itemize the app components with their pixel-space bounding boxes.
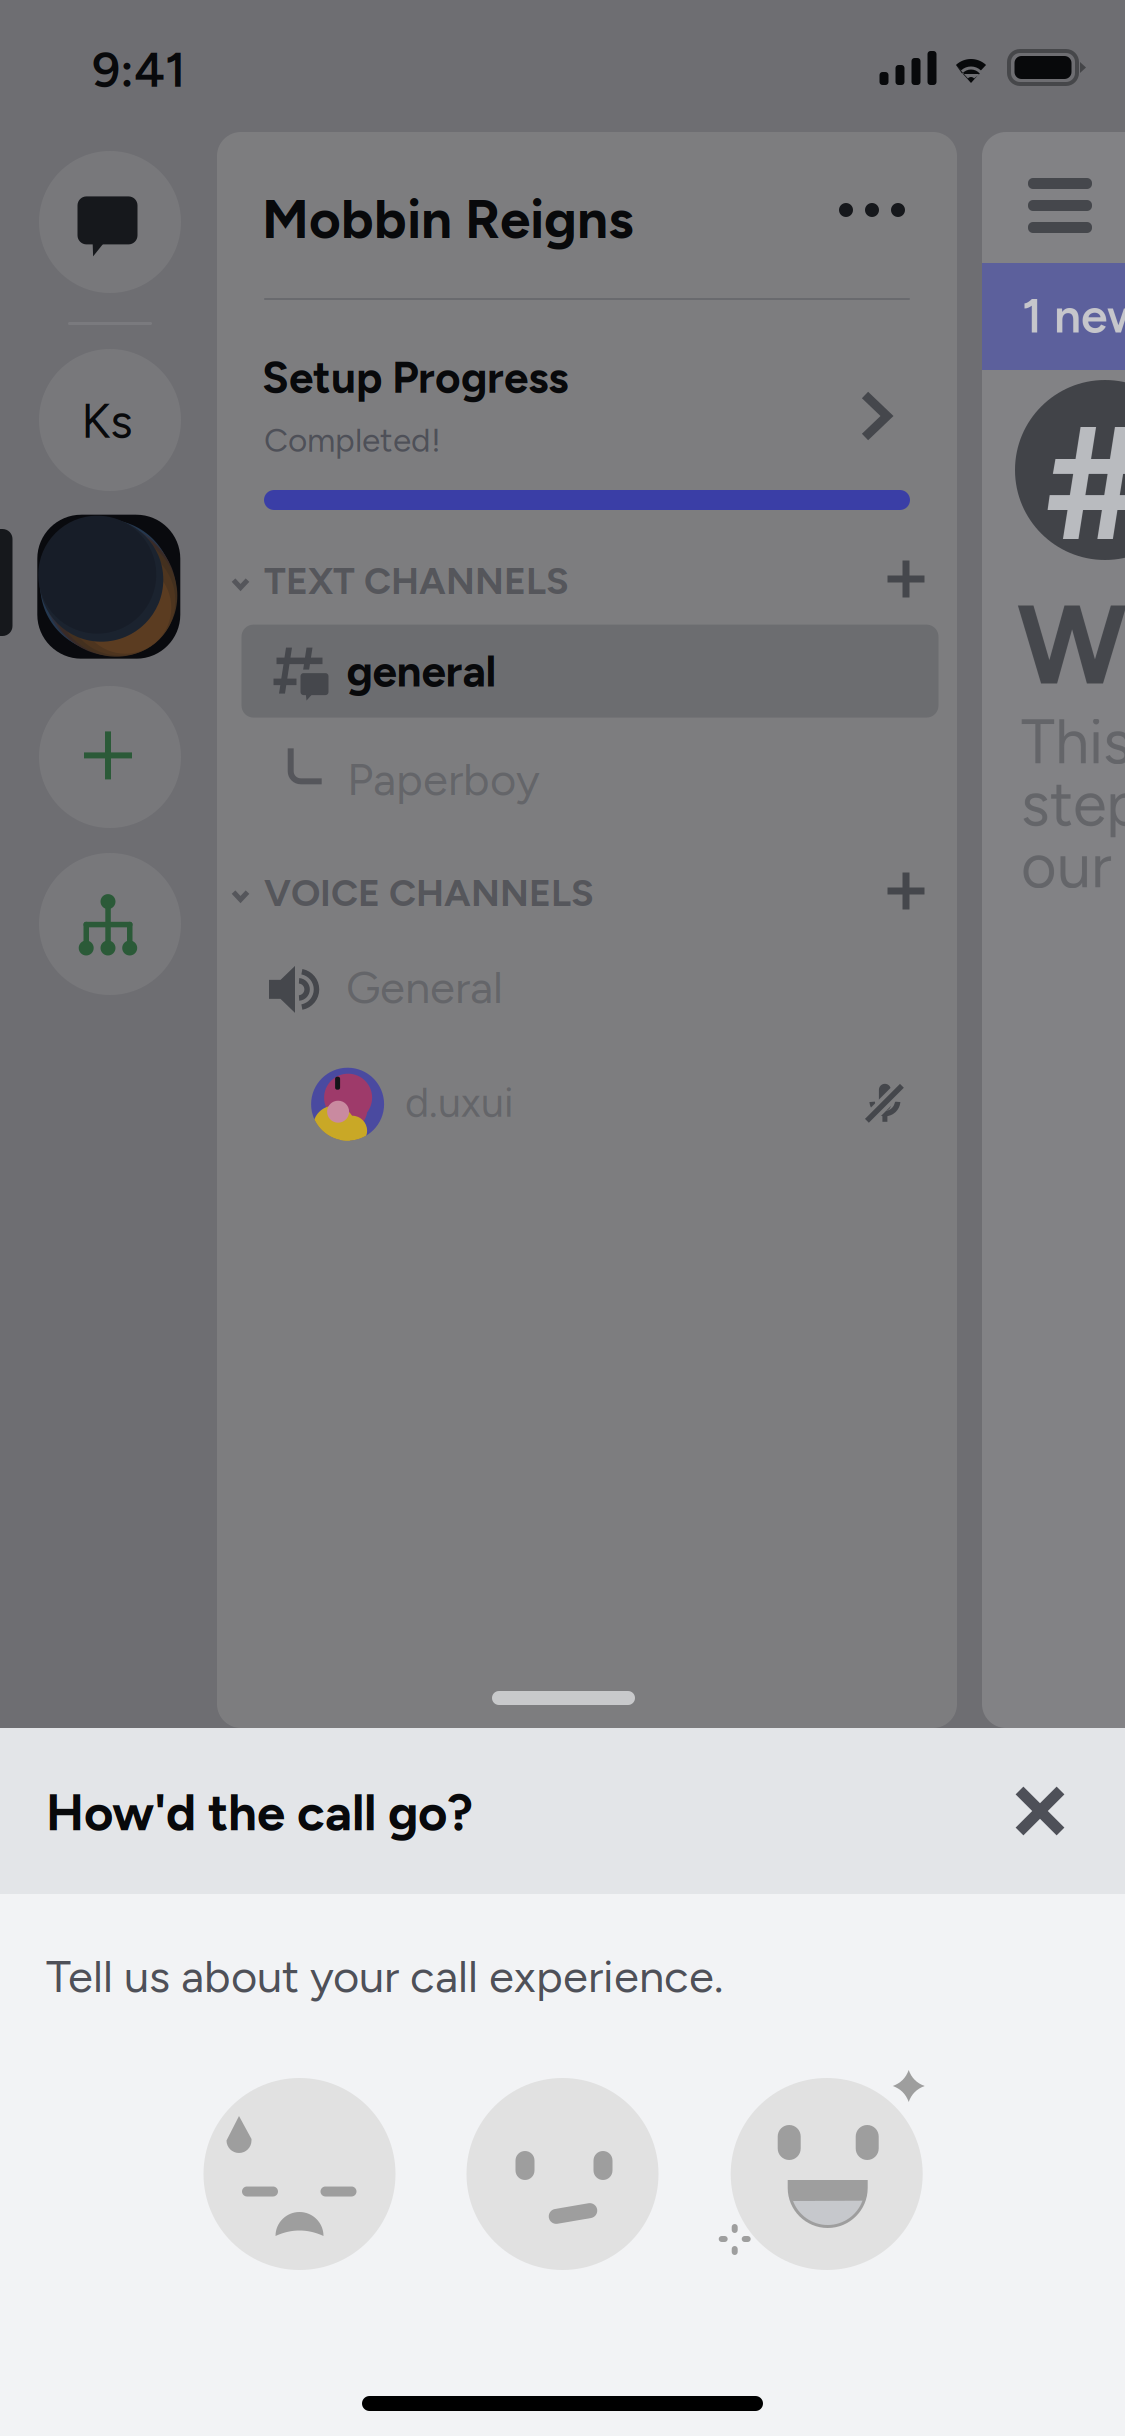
button[interactable]: Create text channel [868,541,944,617]
button[interactable]: d.uxui [217,1068,917,1142]
staticText: 1 new [1022,287,1125,345]
staticText: # [1046,387,1125,579]
button[interactable]: general [241,625,938,718]
staticText: Paperboy [347,752,540,806]
button[interactable]: TEXT CHANNELS [217,565,697,605]
button[interactable]: VOICE CHANNELS [217,877,697,917]
button[interactable]: Ks [39,349,181,491]
button[interactable]: Server options [817,170,927,250]
staticText: steps [1021,767,1125,841]
button[interactable]: Setup Progress [217,342,957,532]
button[interactable]: Direct messages [39,151,181,293]
button[interactable]: Great call [719,2070,925,2270]
staticText: Setup Progress [262,351,569,404]
button[interactable]: Paperboy [217,748,817,818]
staticText: How'd the call go? [46,1782,473,1843]
staticText: TEXT CHANNELS [264,559,569,603]
staticText: We [1017,577,1125,711]
staticText: d.uxui [405,1077,514,1127]
staticText: our G [1021,829,1125,903]
staticText: General [346,960,503,1014]
staticText: Ks [81,392,132,450]
staticText: Tell us about your call experience. [46,1949,723,2003]
button[interactable]: Explore public servers [39,853,181,995]
button[interactable]: Bad call [203,2078,395,2270]
staticText: Completed! [264,420,441,460]
staticText: This i [1021,705,1125,779]
button[interactable]: General [217,966,817,1022]
button[interactable]: Create voice channel [868,853,944,929]
staticText: Mobbin Reigns [262,186,633,252]
button[interactable]: Close [985,1756,1095,1866]
staticText: 9:41 [92,40,186,99]
button[interactable]: Add a server [39,686,181,828]
staticText: general [346,645,496,697]
button[interactable]: Okay call [466,2078,658,2270]
staticText: VOICE CHANNELS [264,871,594,915]
button[interactable]: Server Mobbin Reigns [37,515,180,659]
